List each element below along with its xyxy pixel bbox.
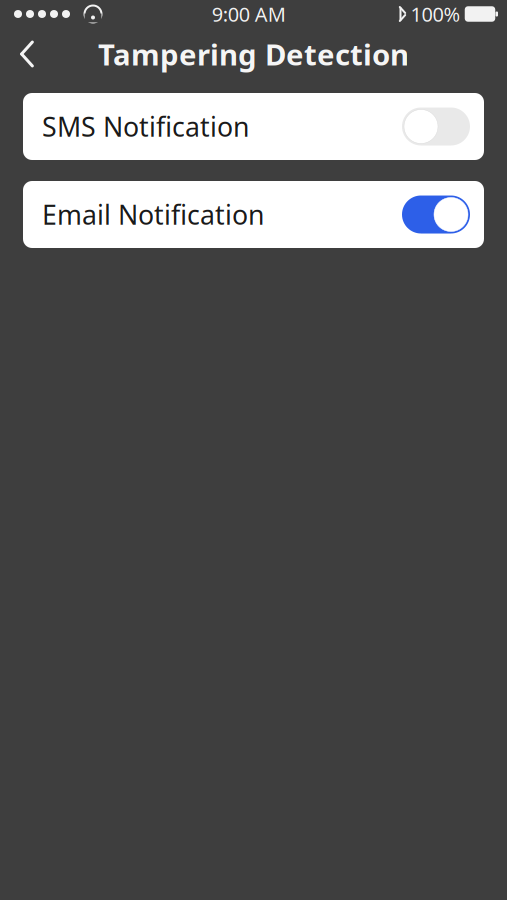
staticText: Tampering Detection bbox=[98, 34, 409, 73]
staticText: SMS Notification bbox=[42, 109, 249, 144]
button[interactable]: Back bbox=[0, 28, 54, 80]
staticText: 100% bbox=[410, 1, 460, 27]
staticText: 9:00 AM bbox=[212, 1, 286, 27]
button[interactable]: Email Notification bbox=[23, 181, 484, 248]
staticText: Email Notification bbox=[42, 197, 264, 232]
button[interactable]: SMS Notification bbox=[23, 93, 484, 160]
